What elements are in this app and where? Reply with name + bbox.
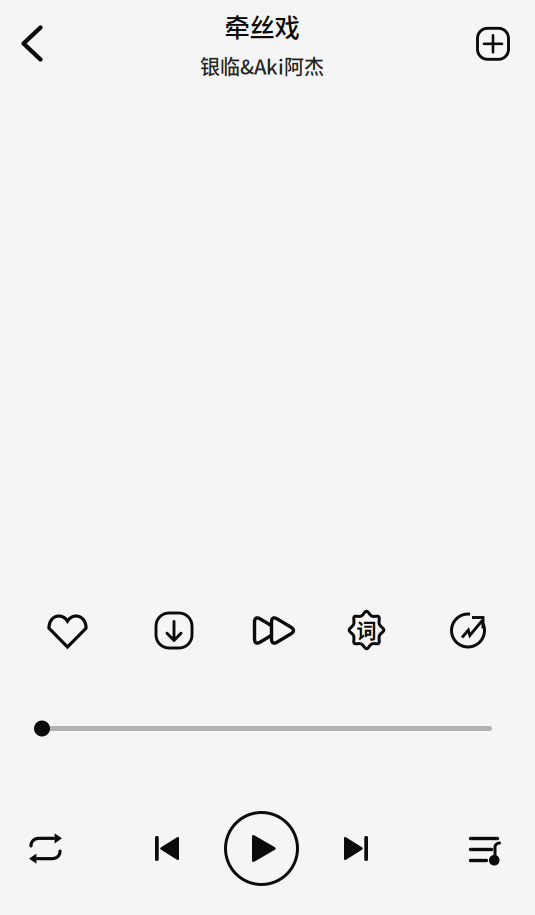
button[interactable]: Next track [321, 813, 391, 883]
button[interactable]: Favourite [29, 599, 105, 661]
button[interactable]: Fast forward [237, 599, 313, 661]
button[interactable]: Add [464, 15, 522, 73]
button[interactable]: Previous track [132, 813, 202, 883]
staticText: 牵丝戏 [224, 8, 299, 44]
button[interactable]: Playlist [449, 816, 523, 886]
button[interactable]: Repeat [8, 813, 82, 883]
button[interactable]: Download [136, 599, 212, 661]
button[interactable]: Back [2, 13, 62, 73]
button[interactable]: Play [219, 806, 303, 890]
button[interactable]: Lyrics [328, 599, 404, 661]
staticText: 词 [356, 615, 376, 644]
staticText: 银临&Aki阿杰 [200, 51, 324, 80]
button[interactable]: Share [430, 599, 506, 661]
